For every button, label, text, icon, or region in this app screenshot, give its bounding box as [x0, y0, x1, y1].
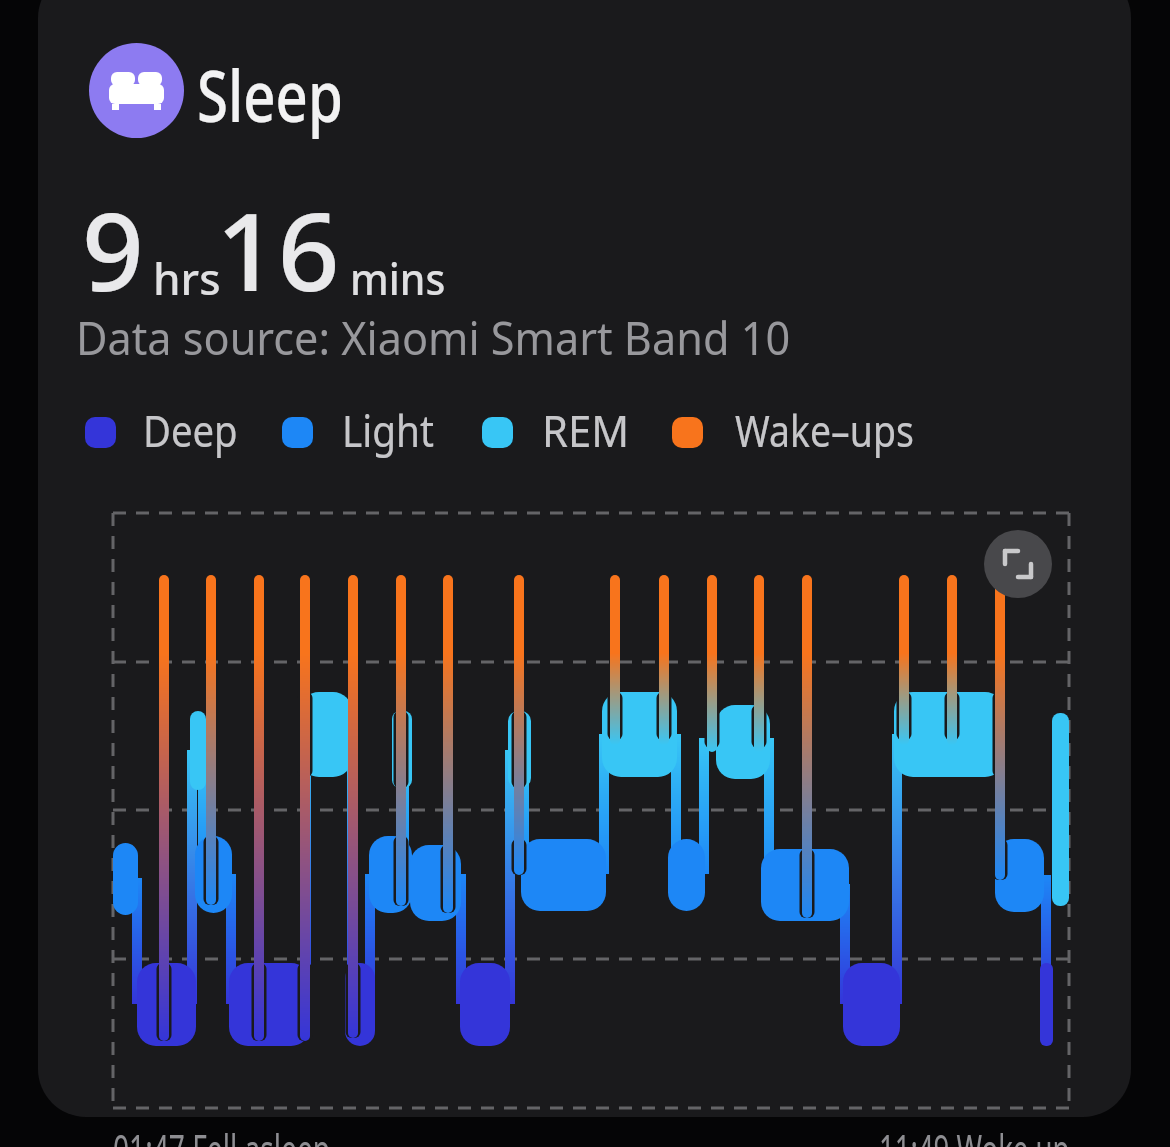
- staticText: 11:49 Woke up: [879, 1120, 1070, 1147]
- staticText: 16: [216, 176, 340, 323]
- staticText: hrs: [153, 248, 221, 308]
- staticText: Wake–ups: [735, 400, 914, 460]
- staticText: Sleep: [197, 47, 343, 142]
- staticText: 01:47 Fell asleep: [113, 1120, 331, 1147]
- staticText: Data source: Xiaomi Smart Band 10: [76, 307, 790, 368]
- button[interactable]: [89, 43, 184, 138]
- staticText: 9: [82, 176, 144, 323]
- button[interactable]: [984, 530, 1052, 598]
- staticText: REM: [542, 400, 629, 460]
- staticText: Light: [342, 400, 434, 460]
- staticText: mins: [350, 248, 446, 308]
- staticText: Deep: [143, 400, 238, 460]
